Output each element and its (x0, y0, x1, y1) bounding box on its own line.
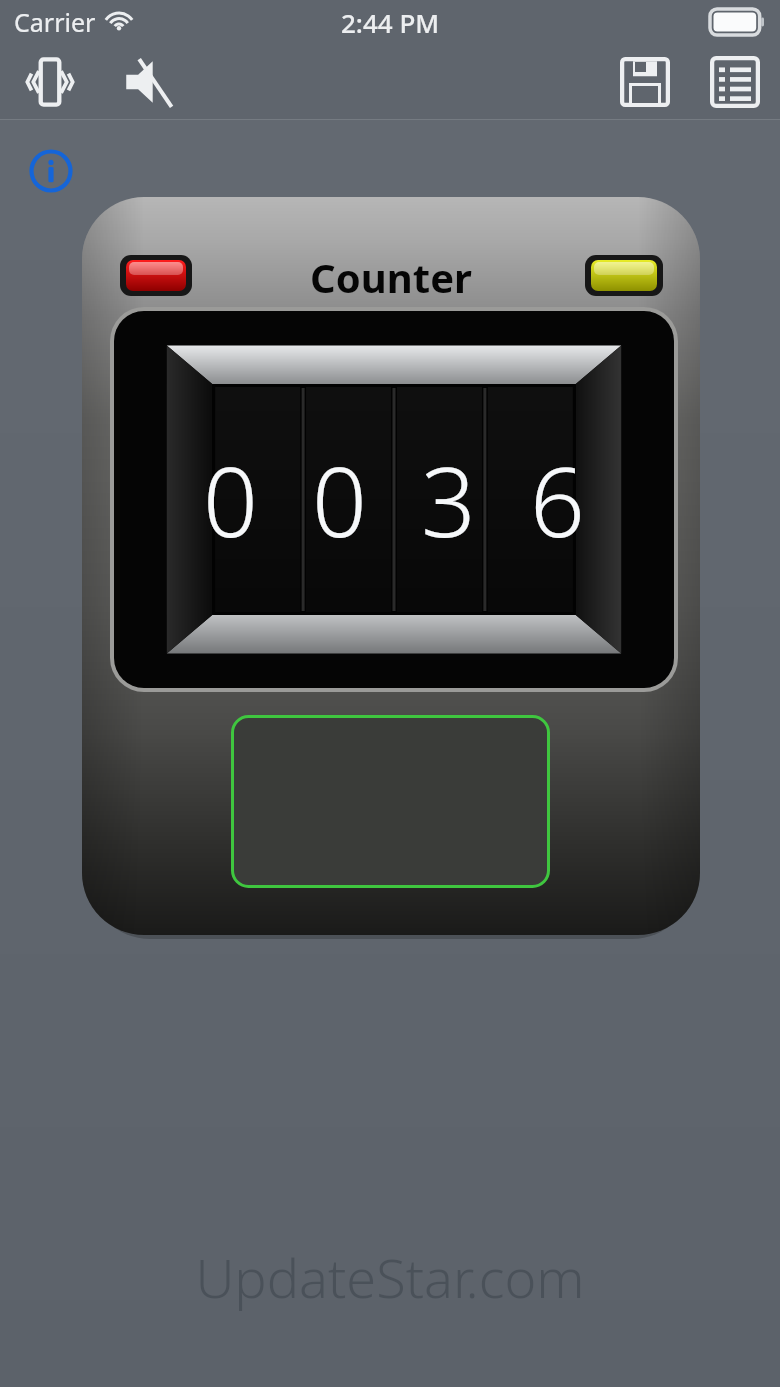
button[interactable]: Count (231, 715, 550, 888)
button[interactable]: Save (600, 44, 690, 119)
button[interactable]: List (690, 44, 780, 119)
staticText: 2:44 PM (341, 5, 440, 40)
staticText: 3 (421, 434, 476, 565)
staticText: 0 (203, 434, 258, 565)
staticText: 6 (530, 434, 585, 565)
button[interactable]: Mute (100, 44, 200, 119)
staticText: 0 (312, 434, 367, 565)
button[interactable]: Vibrate (0, 44, 100, 119)
button[interactable]: Mode (591, 260, 657, 291)
staticText: Counter (82, 250, 700, 304)
staticText: Carrier (14, 5, 96, 39)
button[interactable]: Info (26, 146, 76, 196)
staticText: UpdateStar.com (0, 1240, 780, 1314)
button[interactable]: Reset (126, 260, 186, 291)
button[interactable]: 0 (110, 307, 678, 692)
